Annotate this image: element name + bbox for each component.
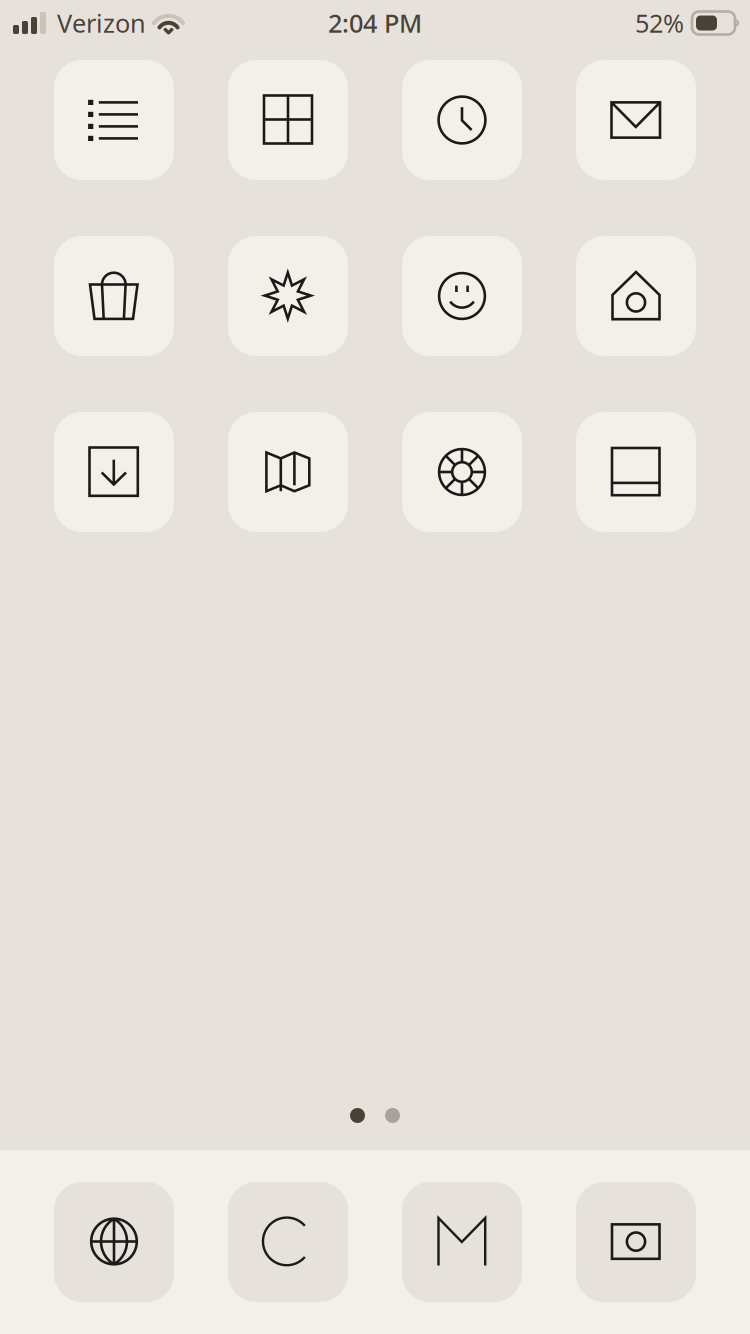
button[interactable]: Safari [54, 1182, 174, 1302]
button[interactable]: Shop [54, 236, 174, 356]
button[interactable]: Contacts [228, 1182, 348, 1302]
button[interactable]: Downloads [54, 412, 174, 532]
button[interactable]: Sparkle [228, 236, 348, 356]
button[interactable]: Home [576, 236, 696, 356]
button[interactable]: Notes [576, 412, 696, 532]
staticText: Verizon [57, 6, 146, 40]
button[interactable]: Photos [576, 1182, 696, 1302]
button[interactable]: Clock [402, 60, 522, 180]
button[interactable]: Messages [402, 1182, 522, 1302]
button[interactable]: Mood [402, 236, 522, 356]
button[interactable]: Support [402, 412, 522, 532]
button[interactable]: Reminders [54, 60, 174, 180]
staticText: 52% [635, 6, 684, 40]
button[interactable]: Widgets [228, 60, 348, 180]
staticText: 2:04 PM [328, 6, 422, 40]
button[interactable]: Maps [228, 412, 348, 532]
button[interactable]: Mail [576, 60, 696, 180]
